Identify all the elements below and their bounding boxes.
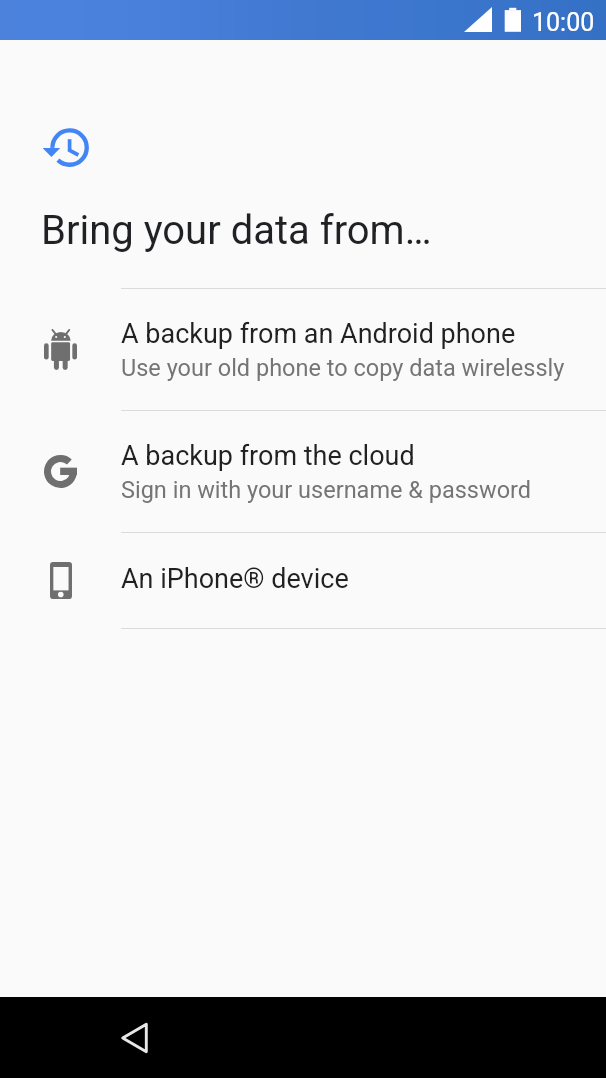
staticText: Bring your data from… [41,207,432,254]
staticText: 10:00 [532,8,595,37]
button[interactable]: Back [100,1007,168,1069]
staticText: Use your old phone to copy data wireless… [121,354,565,382]
button[interactable]: A backup from the cloud [0,411,606,532]
button[interactable]: An iPhone® device [0,533,606,628]
staticText: A backup from the cloud [121,440,415,472]
staticText: A backup from an Android phone [121,318,516,350]
staticText: Sign in with your username & password [121,476,532,504]
staticText: An iPhone® device [121,563,349,595]
button[interactable]: A backup from an Android phone [0,289,606,410]
